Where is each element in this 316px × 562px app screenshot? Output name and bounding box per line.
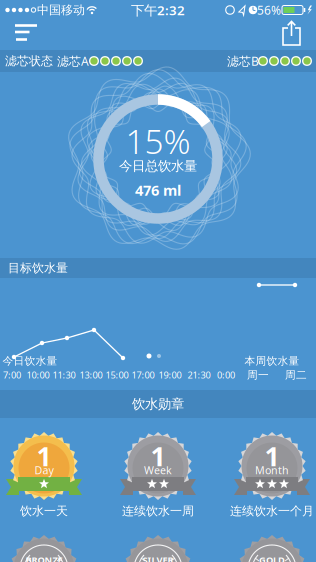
staticText: 滤芯A: [57, 53, 89, 69]
staticText: 56%: [257, 2, 281, 18]
staticText: BRONZE: [25, 554, 62, 562]
staticText: 周一: [247, 368, 269, 381]
staticText: 10:00: [26, 369, 49, 381]
staticText: 滤芯状态: [5, 54, 53, 68]
staticText: 15:00: [105, 369, 128, 381]
staticText: Week: [144, 463, 172, 477]
staticText: 1: [264, 438, 279, 474]
staticText: 周二: [285, 368, 307, 381]
button[interactable]: Share: [279, 20, 303, 47]
staticText: GOLD: [259, 554, 285, 562]
staticText: 19:00: [158, 369, 181, 381]
staticText: 今日总饮水量: [119, 158, 197, 174]
staticText: 连续饮水一个月: [230, 504, 314, 518]
staticText: 本周饮水量: [244, 354, 299, 367]
staticText: 连续饮水一周: [122, 504, 194, 518]
staticText: 目标饮水量: [8, 261, 68, 275]
staticText: 饮水勋章: [132, 396, 184, 412]
staticText: 17:00: [131, 369, 154, 381]
staticText: 今日饮水量: [2, 354, 57, 367]
staticText: Day: [34, 463, 53, 477]
staticText: 1: [150, 438, 165, 474]
staticText: 0:00: [217, 369, 235, 381]
staticText: 下午2:32: [131, 1, 185, 19]
staticText: 1: [36, 438, 51, 474]
staticText: 11:30: [52, 369, 75, 381]
staticText: 中国移动: [37, 3, 85, 17]
staticText: 13:00: [79, 369, 102, 381]
staticText: SILVER: [142, 554, 173, 562]
staticText: 21:30: [187, 369, 210, 381]
button[interactable]: Menu: [0, 0, 52, 50]
staticText: 滤芯B: [227, 53, 259, 69]
staticText: 饮水一天: [20, 504, 68, 518]
staticText: 15%: [125, 119, 190, 163]
staticText: 476 ml: [135, 180, 181, 200]
staticText: 7:00: [3, 369, 21, 381]
staticText: Month: [255, 463, 289, 477]
